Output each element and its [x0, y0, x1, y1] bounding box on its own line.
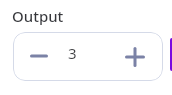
- staticText: Output: [12, 6, 64, 26]
- button[interactable]: Increase: [116, 36, 154, 77]
- button[interactable]: Next field: [170, 38, 172, 71]
- button[interactable]: Decrease: [21, 35, 56, 76]
- staticText: 3: [68, 43, 77, 63]
